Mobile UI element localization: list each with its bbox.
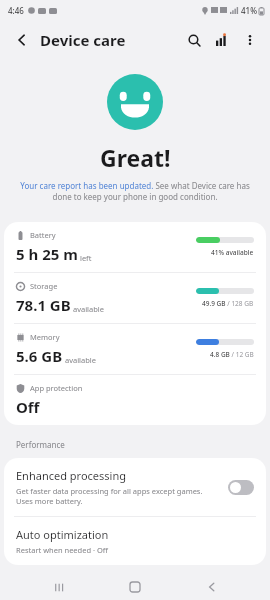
button[interactable]: Home [117,574,153,600]
staticText: 78.1 GB [16,295,71,315]
staticText: available [71,304,105,314]
staticText: Great! [100,142,171,173]
staticText: Enhanced processing [16,468,126,483]
staticText: Auto optimization [16,527,109,542]
button[interactable]: Enhanced processing [4,458,266,516]
staticText: 49.9 GB / 128 GB [202,299,254,308]
staticText: Restart when needed · Off [16,545,108,555]
button[interactable]: Back [10,28,34,52]
staticText: Off [16,397,40,417]
staticText: Device care [40,30,126,50]
staticText: available [63,355,97,365]
button[interactable]: Search [180,26,208,54]
button[interactable]: App protection [4,375,266,425]
staticText: Storage [30,281,58,291]
button[interactable]: Auto optimization [4,517,266,565]
button[interactable]: Recent apps [41,574,77,600]
staticText: 4:46 [8,5,24,16]
staticText: App protection [30,383,83,393]
staticText: 41% [241,5,257,16]
staticText: Your care report has been updated. See w… [14,180,256,202]
staticText: Performance [16,439,65,450]
staticText: 5 h 25 m [16,244,78,264]
button[interactable]: Enhanced processing toggle [228,480,254,495]
staticText: Memory [30,332,60,342]
staticText: Battery [30,230,56,240]
button[interactable]: More options [236,26,264,54]
staticText: 5.6 GB [16,346,63,366]
button[interactable]: Memory [4,324,266,374]
button[interactable]: Storage [4,273,266,323]
button[interactable]: Back [194,574,230,600]
staticText: Get faster data processing for all apps … [16,486,220,506]
staticText: left [78,253,92,263]
button[interactable]: Battery [4,222,266,272]
staticText: 41% available [211,248,254,257]
button[interactable]: Statistics [208,26,236,54]
staticText: 4.8 GB / 12 GB [210,350,254,359]
